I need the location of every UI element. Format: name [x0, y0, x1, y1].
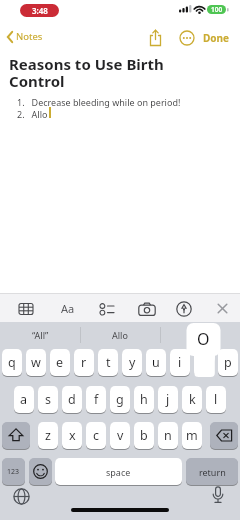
staticText: space	[106, 466, 131, 478]
staticText: r	[81, 354, 87, 371]
button[interactable]: l	[206, 386, 226, 413]
button[interactable]: w	[26, 349, 46, 376]
button[interactable]: h	[134, 386, 154, 413]
button[interactable]	[210, 422, 238, 449]
button[interactable]: y	[122, 349, 142, 376]
staticText: “All”	[32, 329, 49, 341]
staticText: b	[140, 427, 148, 444]
staticText: m	[186, 427, 198, 444]
button[interactable]: p	[218, 349, 238, 376]
staticText: x	[69, 427, 76, 444]
button[interactable]: c	[86, 422, 106, 449]
staticText: Reasons to Use Birth	[9, 54, 164, 74]
staticText: Aa	[61, 301, 75, 316]
button[interactable]	[176, 301, 192, 317]
button[interactable]: s	[38, 386, 58, 413]
button[interactable]	[179, 30, 195, 46]
button[interactable]: Notes	[4, 29, 52, 47]
staticText: a	[20, 391, 28, 408]
button[interactable]	[216, 302, 229, 315]
button[interactable]: k	[182, 386, 202, 413]
staticText: O	[197, 328, 210, 350]
staticText: p	[224, 354, 232, 371]
button[interactable]: i	[170, 349, 190, 376]
staticText: return	[199, 466, 226, 478]
staticText: f	[94, 391, 99, 408]
staticText: c	[93, 427, 100, 444]
staticText: z	[45, 427, 51, 444]
button[interactable]: u	[146, 349, 166, 376]
button[interactable]: “All”	[0, 322, 80, 348]
staticText: h	[140, 391, 148, 408]
button[interactable]: 3:48	[20, 4, 59, 17]
button[interactable]: t	[98, 349, 118, 376]
staticText: i	[178, 354, 182, 371]
staticText: Allo	[112, 329, 128, 341]
staticText: j	[166, 391, 170, 408]
button[interactable]: a	[14, 386, 34, 413]
staticText: 1. Decrease bleeding while on period!	[17, 96, 181, 108]
staticText: s	[45, 391, 51, 408]
button[interactable]: v	[110, 422, 130, 449]
button[interactable]: Done	[203, 31, 230, 45]
staticText: y	[129, 354, 136, 371]
staticText: Control	[9, 71, 65, 91]
button[interactable]: m	[182, 422, 202, 449]
staticText: Notes	[16, 30, 43, 43]
staticText: q	[8, 354, 16, 371]
button[interactable]: Allo	[80, 322, 160, 348]
staticText: e	[56, 354, 64, 371]
button[interactable]: g	[110, 386, 130, 413]
staticText: n	[164, 427, 172, 444]
staticText: 2. Allo	[17, 108, 48, 120]
button[interactable]: return	[186, 458, 238, 485]
button[interactable]	[148, 29, 165, 47]
button[interactable]: f	[86, 386, 106, 413]
staticText: t	[106, 354, 111, 371]
button[interactable]: b	[134, 422, 154, 449]
button[interactable]	[2, 422, 30, 449]
button[interactable]: Aa	[61, 301, 75, 316]
staticText: 123	[7, 467, 20, 477]
staticText: d	[68, 391, 76, 408]
button[interactable]: space	[55, 458, 182, 485]
button[interactable]: x	[62, 422, 82, 449]
button[interactable]: z	[38, 422, 58, 449]
staticText: g	[116, 391, 124, 408]
button[interactable]: q	[2, 349, 22, 376]
button[interactable]	[99, 302, 115, 316]
staticText: w	[31, 354, 41, 371]
button[interactable]: d	[62, 386, 82, 413]
staticText: Done	[203, 31, 230, 45]
staticText: 100	[211, 5, 223, 14]
staticText: k	[189, 391, 196, 408]
staticText: 3:48	[32, 5, 48, 16]
button[interactable]: r	[74, 349, 94, 376]
button[interactable]: e	[50, 349, 70, 376]
button[interactable]	[29, 458, 52, 485]
button[interactable]: n	[158, 422, 178, 449]
staticText: u	[152, 354, 160, 371]
button[interactable]	[138, 302, 156, 316]
staticText: l	[214, 391, 218, 408]
button[interactable]: O	[186, 322, 221, 356]
button[interactable]: 123	[2, 458, 25, 485]
button[interactable]	[18, 302, 34, 316]
button[interactable]: j	[158, 386, 178, 413]
staticText: v	[117, 427, 124, 444]
